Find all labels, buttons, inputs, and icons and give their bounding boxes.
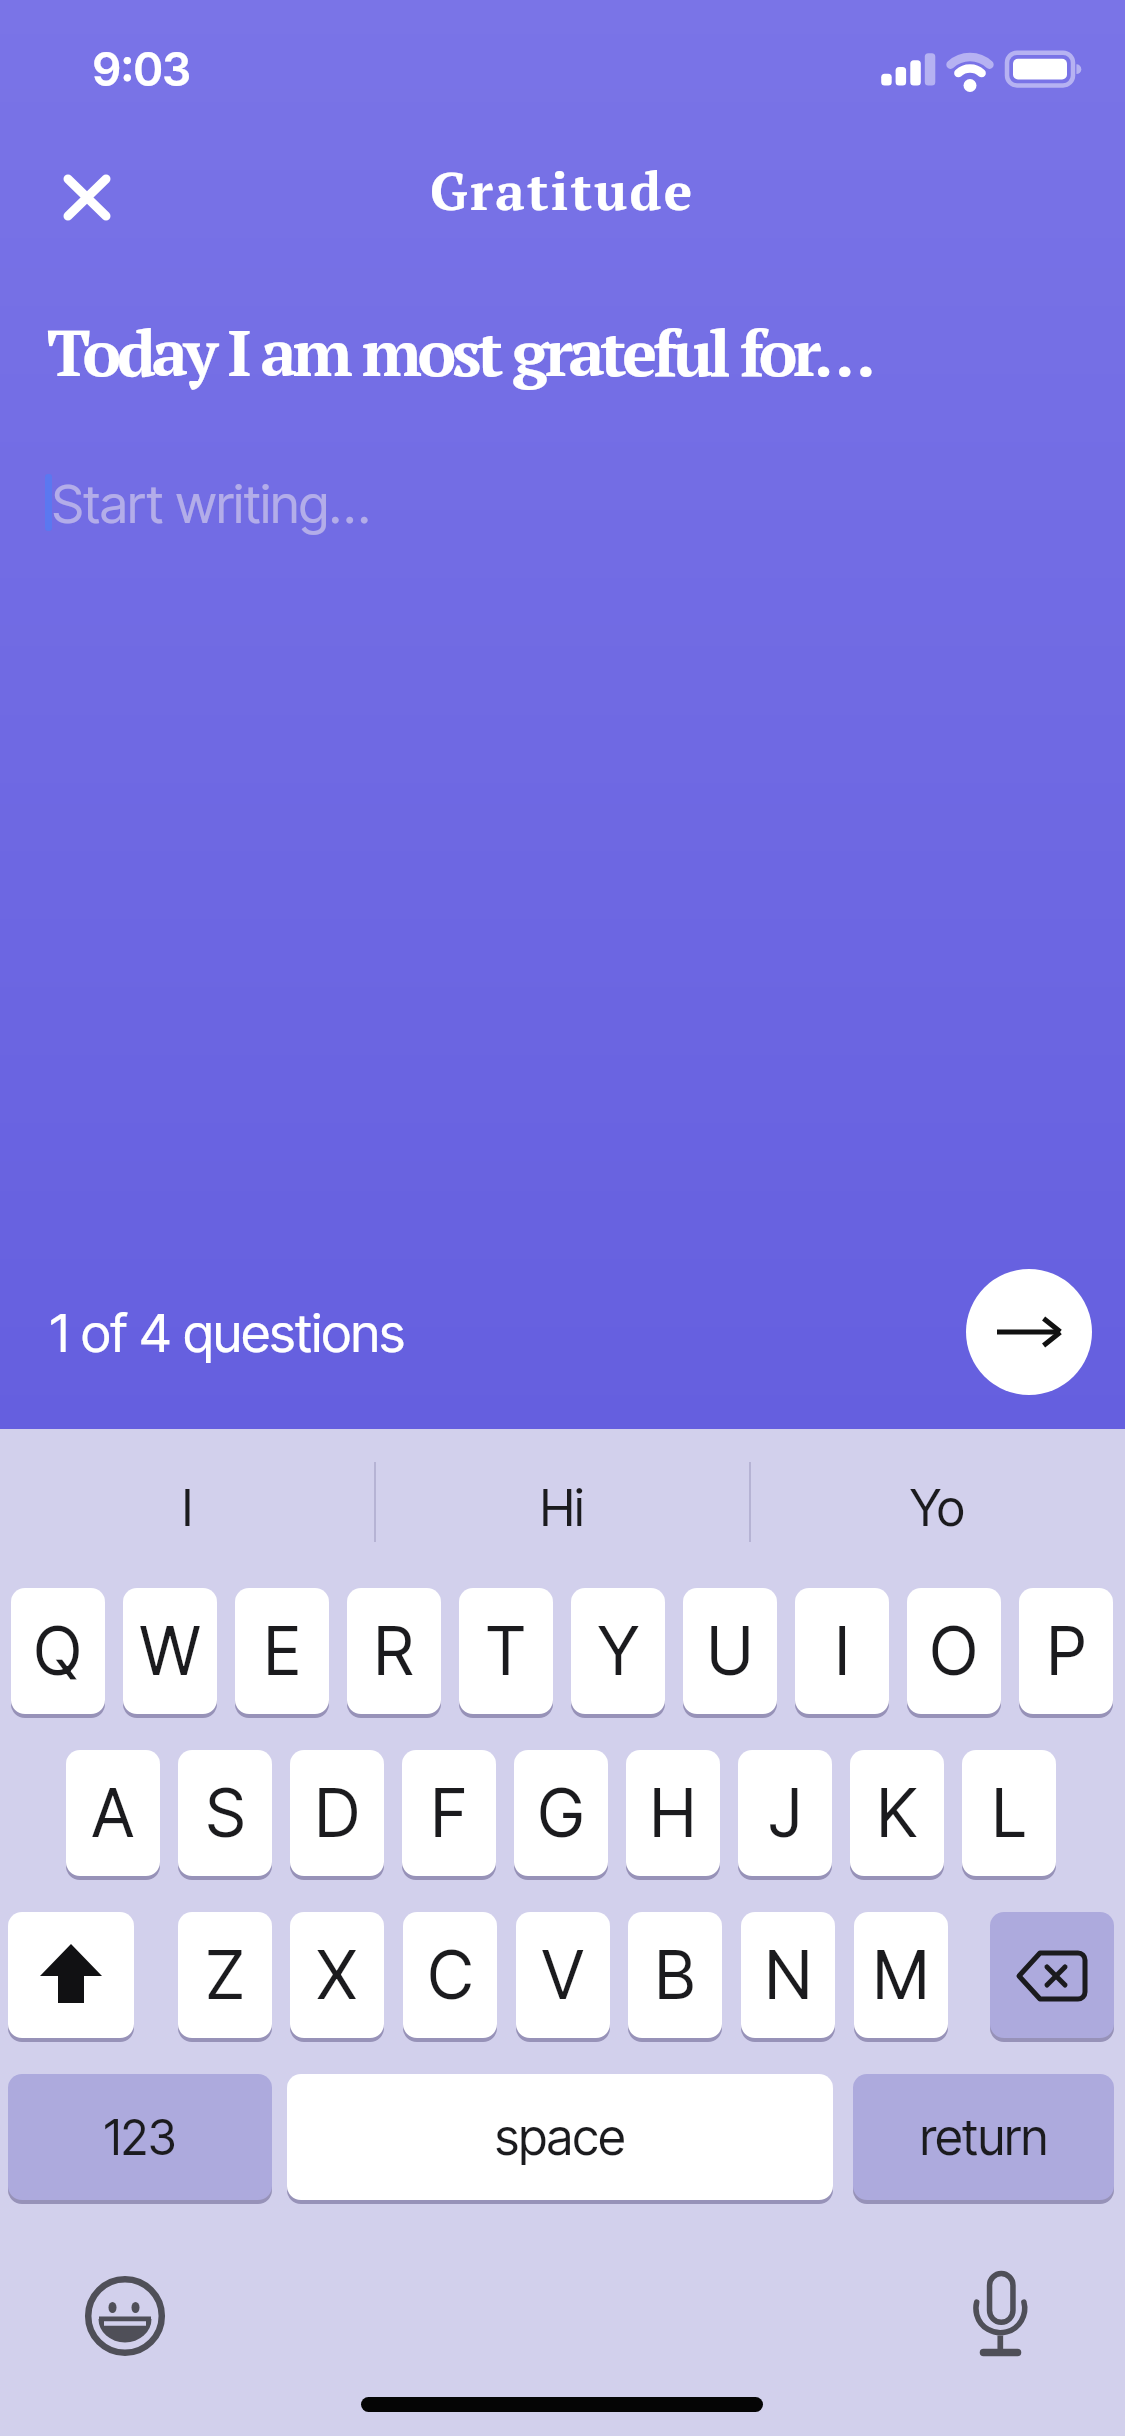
staticText: 123 [104, 2108, 177, 2166]
staticText: 9:03 [92, 41, 190, 97]
staticText: D [315, 1773, 360, 1853]
staticText: M [873, 1935, 929, 2015]
staticText: S [206, 1773, 245, 1853]
staticText: Hi [540, 1478, 585, 1534]
staticText: Today I am most grateful for… [47, 308, 872, 394]
staticText: Q [34, 1611, 82, 1691]
staticText: E [264, 1611, 301, 1691]
staticText: U [707, 1611, 753, 1691]
staticText: F [431, 1773, 467, 1853]
staticText: L [992, 1773, 1027, 1853]
staticText: C [428, 1935, 473, 2015]
staticText: G [538, 1773, 584, 1853]
staticText: K [877, 1773, 917, 1853]
staticText: X [317, 1935, 357, 2015]
staticText: N [765, 1935, 812, 2015]
staticText: I [182, 1478, 193, 1534]
staticText: V [542, 1935, 584, 2015]
staticText: Yo [910, 1478, 965, 1534]
staticText: A [92, 1773, 134, 1853]
staticText: R [374, 1611, 414, 1691]
staticText: I [835, 1611, 850, 1691]
staticText: W [140, 1611, 201, 1691]
staticText: space [495, 2107, 626, 2167]
staticText: Start writing… [52, 472, 370, 536]
staticText: J [769, 1773, 802, 1853]
staticText: H [650, 1773, 696, 1853]
staticText: O [930, 1611, 978, 1691]
staticText: 1 of 4 questions [50, 1301, 405, 1365]
staticText: B [655, 1935, 695, 2015]
staticText: Gratitude [430, 155, 695, 225]
staticText: T [486, 1611, 526, 1691]
staticText: Z [206, 1935, 245, 2015]
staticText: return [920, 2107, 1048, 2167]
staticText: Y [598, 1611, 639, 1691]
staticText: P [1047, 1611, 1086, 1691]
